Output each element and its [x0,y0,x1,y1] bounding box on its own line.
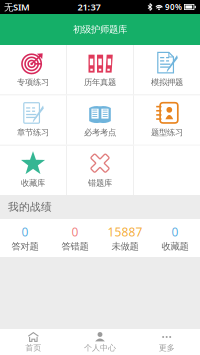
button[interactable]: 错题库 [67,146,133,195]
staticText: 0 [71,224,78,240]
staticText: 0 [171,224,178,240]
button[interactable]: 个人中心 [67,329,133,355]
staticText: 答错题 [61,241,88,252]
staticText: 专项练习 [17,77,49,87]
staticText: 收藏库 [21,178,45,188]
button[interactable]: 历年真题 [67,45,133,94]
button[interactable]: 收藏库 [0,146,66,195]
button[interactable]: 专项练习 [0,45,66,94]
staticText: 个人中心 [84,343,116,353]
staticText: 历年真题 [84,77,116,87]
staticText: 模拟押题 [151,77,183,87]
staticText: 必考考点 [84,127,116,138]
staticText: 答对题 [11,241,38,252]
button[interactable]: 必考考点 [67,95,133,145]
staticText: 90% [165,2,182,12]
staticText: 收藏题 [161,241,188,252]
staticText: 0 [21,224,28,240]
button[interactable]: 模拟押题 [134,45,200,94]
staticText: 初级护师题库 [73,24,127,35]
staticText: 更多 [159,343,175,353]
staticText: 题型练习 [151,127,183,138]
staticText: 错题库 [88,178,112,188]
staticText: 无SIM [4,1,30,13]
staticText: 21:37 [77,1,100,13]
staticText: 首页 [25,343,41,353]
button[interactable]: 章节练习 [0,95,66,145]
staticText: 15887 [107,224,142,240]
staticText: 章节练习 [17,127,49,138]
button[interactable]: 题型练习 [134,95,200,145]
staticText: 我的战绩 [8,200,52,213]
button[interactable]: 更多 [133,329,200,355]
button[interactable]: 首页 [0,329,67,355]
staticText: 未做题 [111,241,138,252]
